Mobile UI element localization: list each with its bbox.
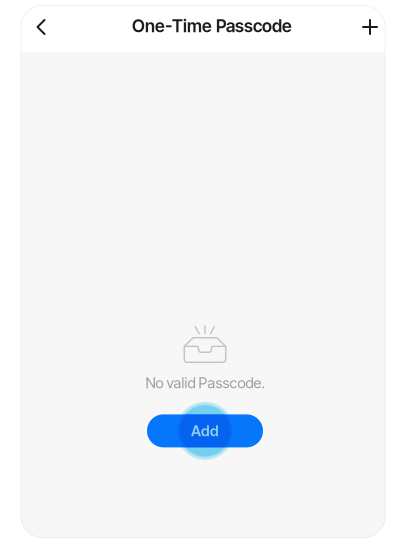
button[interactable]: Back [23, 5, 59, 52]
button[interactable]: Add [147, 414, 263, 447]
staticText: No valid Passcode. [145, 374, 264, 392]
button[interactable]: Add passcode [352, 5, 388, 52]
staticText: One-Time Passcode [132, 15, 292, 36]
staticText: Add [191, 422, 219, 440]
